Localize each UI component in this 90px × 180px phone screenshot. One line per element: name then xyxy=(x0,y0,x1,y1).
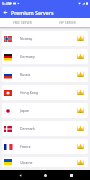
button[interactable]: France xyxy=(2,139,88,154)
button[interactable]: Back xyxy=(0,7,11,18)
staticText: VIP SERVER xyxy=(59,21,76,25)
staticText: 5:45 xyxy=(2,1,10,6)
button[interactable]: Denmark xyxy=(2,121,88,136)
staticText: Germany xyxy=(20,54,35,59)
staticText: FREE SERVER xyxy=(13,21,32,25)
button[interactable]: Ukraine xyxy=(2,157,88,167)
button[interactable]: FREE SERVER xyxy=(0,18,45,27)
button[interactable]: VIP SERVER xyxy=(45,18,90,27)
button[interactable]: Hong Kong xyxy=(2,85,88,100)
button[interactable]: Home xyxy=(39,170,51,180)
staticText: Norway xyxy=(20,36,33,41)
button[interactable]: Norway xyxy=(2,31,88,46)
staticText: Japan xyxy=(20,108,29,113)
button[interactable]: Japan xyxy=(2,103,88,118)
staticText: Ukraine xyxy=(20,160,33,165)
button[interactable]: Recent apps xyxy=(65,170,77,180)
button[interactable]: Back xyxy=(14,170,26,180)
staticText: Russia xyxy=(20,72,31,77)
staticText: Denmark xyxy=(20,126,35,131)
button[interactable]: Germany xyxy=(2,49,88,64)
staticText: Hong Kong xyxy=(20,90,38,95)
staticText: Premium Servers xyxy=(11,9,54,16)
button[interactable]: Russia xyxy=(2,67,88,82)
staticText: France xyxy=(20,144,31,149)
